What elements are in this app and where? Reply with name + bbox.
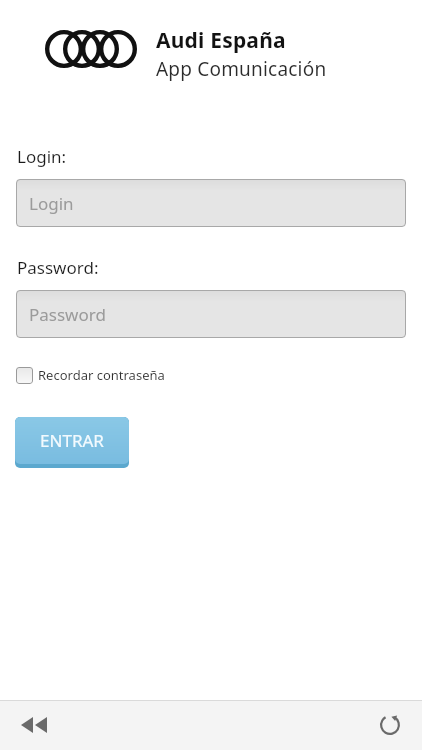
staticText: Recordar contraseña (38, 366, 165, 384)
button[interactable]: Password (16, 290, 406, 338)
staticText: Password: (17, 256, 99, 279)
button[interactable]: Login (16, 179, 406, 227)
staticText: Login (29, 192, 74, 215)
button[interactable]: ENTRAR (15, 417, 129, 468)
staticText: ENTRAR (40, 429, 104, 452)
staticText: Login: (17, 145, 67, 168)
button[interactable]: Recordar contraseña (14, 364, 167, 386)
staticText: Audi España (156, 26, 286, 55)
staticText: Password (29, 303, 106, 326)
button[interactable]: Refresh (366, 701, 414, 749)
staticText: App Comunicación (156, 56, 327, 82)
button[interactable]: Back (10, 701, 58, 749)
